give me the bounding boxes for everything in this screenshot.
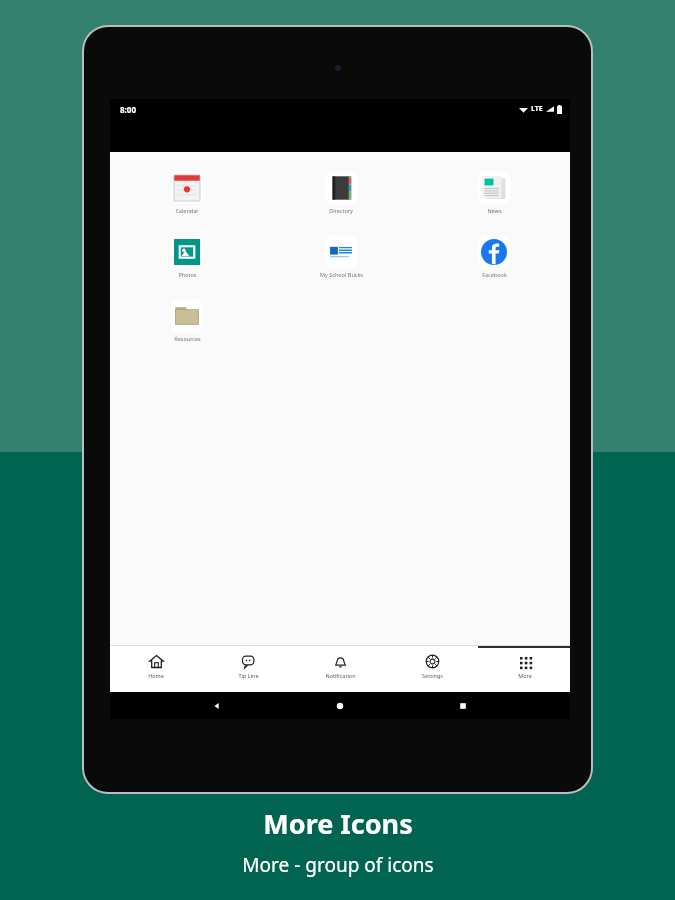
button[interactable]: News [456, 170, 532, 216]
staticText: Directory [329, 207, 353, 214]
staticText: Settings [422, 672, 443, 679]
staticText: Calendar [175, 207, 199, 214]
other: Home [149, 654, 164, 669]
staticText: More - group of icons [242, 852, 434, 878]
staticText: 8:00 [120, 104, 136, 115]
staticText: Resources [174, 335, 201, 342]
button[interactable]: Home [110, 646, 202, 692]
staticText: Notification [325, 672, 356, 679]
button[interactable]: Photos [149, 234, 225, 280]
staticText: LTE [531, 104, 543, 114]
button[interactable]: Home [333, 699, 347, 713]
button[interactable]: My School Bucks [303, 234, 379, 280]
button[interactable]: Calendar [149, 170, 225, 216]
staticText: News [487, 207, 502, 214]
staticText: My School Bucks [320, 271, 363, 278]
staticText: Home [148, 672, 164, 679]
staticText: Tip Line [238, 672, 259, 679]
other: Tip Line [241, 654, 256, 669]
staticText: Facebook [482, 271, 507, 278]
button[interactable]: Directory [303, 170, 379, 216]
other: More [517, 654, 532, 669]
other: Settings [425, 654, 440, 669]
other: Notification [333, 654, 348, 669]
button[interactable]: Back [210, 699, 224, 713]
button[interactable]: Facebook [456, 234, 532, 280]
button[interactable]: More [478, 646, 570, 692]
button[interactable]: Resources [149, 298, 225, 344]
button[interactable]: Recents [456, 699, 470, 713]
button[interactable]: Tip Line [202, 646, 294, 692]
button[interactable]: Notification [294, 646, 386, 692]
button[interactable]: Settings [386, 646, 478, 692]
staticText: Photos [178, 271, 197, 278]
staticText: More Icons [263, 805, 413, 842]
staticText: More [518, 672, 532, 679]
